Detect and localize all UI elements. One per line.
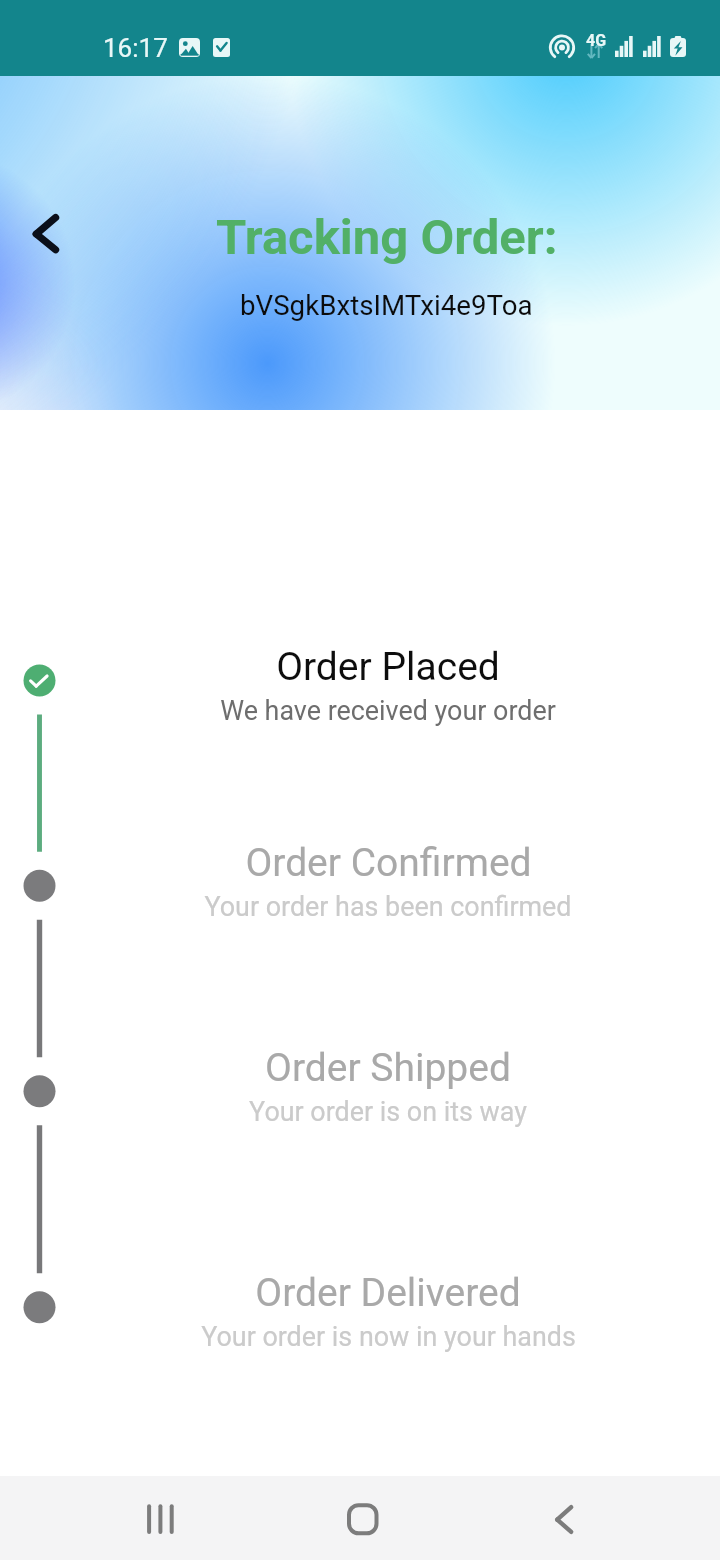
button[interactable]: Recent apps (120, 1483, 200, 1553)
staticText: 4G (586, 31, 607, 50)
staticText: Your order is now in your hands (201, 1321, 576, 1353)
staticText: Your order is on its way (249, 1096, 527, 1128)
button[interactable]: Home (323, 1483, 403, 1553)
button[interactable]: Back (524, 1483, 604, 1553)
staticText: Order Delivered (255, 1270, 521, 1316)
button[interactable]: Back (16, 205, 72, 261)
staticText: Order Confirmed (245, 840, 532, 886)
staticText: Tracking Order: (216, 209, 558, 266)
staticText: Order Placed (276, 644, 500, 690)
staticText: bVSgkBxtsIMTxi4e9Toa (240, 289, 533, 321)
staticText: We have received your order (220, 695, 556, 727)
staticText: Order Shipped (265, 1045, 511, 1091)
staticText: Your order has been confirmed (204, 891, 572, 923)
staticText: 16:17 (103, 33, 168, 63)
